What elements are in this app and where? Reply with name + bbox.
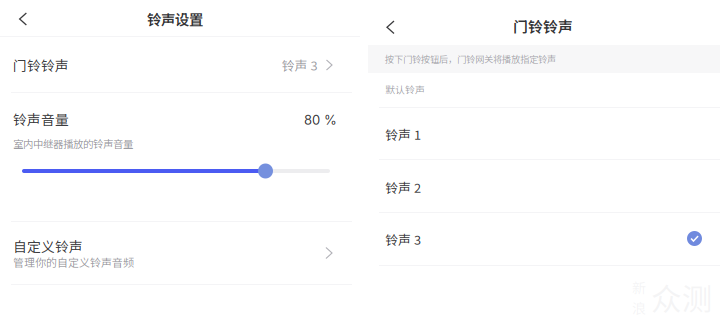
button[interactable]: Ringtone volume xyxy=(22,160,342,182)
staticText: 自定义铃声 xyxy=(13,236,83,256)
staticText: 默认铃声 xyxy=(385,82,425,96)
staticText: 铃声 3 xyxy=(385,230,421,248)
button[interactable]: 铃声 2 xyxy=(360,160,720,213)
button[interactable]: Back xyxy=(4,1,42,37)
staticText: 铃声 2 xyxy=(385,178,421,196)
button[interactable]: 铃声 3 xyxy=(360,212,720,265)
staticText: 室内中继器播放的铃声音量 xyxy=(13,136,133,151)
staticText: 80 % xyxy=(304,112,337,128)
button[interactable]: Back xyxy=(373,9,411,45)
staticText: 门铃铃声 xyxy=(13,55,69,75)
button[interactable]: 门铃铃声 xyxy=(0,38,360,92)
button[interactable]: 自定义铃声 xyxy=(0,222,360,284)
staticText: 铃声 3 xyxy=(281,56,317,74)
staticText: 管理你的自定义铃声音频 xyxy=(13,254,134,270)
staticText: 铃声设置 xyxy=(147,9,203,29)
staticText: 铃声 1 xyxy=(385,125,421,143)
staticText: 浪 xyxy=(632,297,646,317)
staticText: 铃声音量 xyxy=(13,109,69,129)
staticText: 门铃铃声 xyxy=(513,15,573,37)
staticText: 按下门铃按钮后，门铃网关将播放指定铃声 xyxy=(385,52,556,65)
button[interactable]: 铃声 1 xyxy=(360,107,720,160)
staticText: 众测 xyxy=(651,275,713,319)
staticText: 新 xyxy=(632,277,646,297)
